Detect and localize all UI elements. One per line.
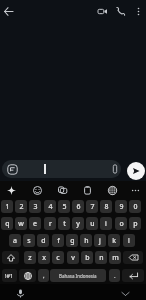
button[interactable]: Enter <box>122 269 144 282</box>
button[interactable]: 6 <box>72 200 84 213</box>
staticText: l <box>128 236 130 246</box>
button[interactable]: l <box>123 234 135 247</box>
button[interactable]: Send <box>127 162 145 180</box>
button[interactable]: z <box>24 251 36 264</box>
staticText: 6 <box>76 202 81 212</box>
staticText: p <box>133 219 138 229</box>
button[interactable]: v <box>67 251 79 264</box>
button[interactable]: More options <box>127 0 146 22</box>
button[interactable]: Language <box>19 269 36 282</box>
button[interactable]: s <box>23 234 35 247</box>
button[interactable]: 1 <box>1 200 13 213</box>
staticText: a <box>13 236 17 246</box>
button[interactable]: h <box>80 234 92 247</box>
staticText: 4 <box>48 202 53 212</box>
button[interactable]: b <box>81 251 93 264</box>
staticText: c <box>56 253 60 263</box>
button[interactable]: x <box>38 251 50 264</box>
button[interactable]: a <box>9 234 21 247</box>
staticText: u <box>90 219 95 229</box>
button[interactable]: Hide keyboard <box>117 285 133 300</box>
button[interactable]: q <box>1 217 13 230</box>
staticText: h <box>84 236 89 246</box>
staticText: m <box>112 253 119 263</box>
button[interactable]: w <box>15 217 27 230</box>
staticText: 2 <box>19 202 24 212</box>
button[interactable]: 5 <box>58 200 70 213</box>
staticText: x <box>42 253 46 263</box>
button[interactable]: c <box>52 251 64 264</box>
staticText: 8 <box>104 202 109 212</box>
staticText: f <box>57 236 60 246</box>
staticText: d <box>41 236 46 246</box>
staticText: 5 <box>62 202 67 212</box>
staticText: y <box>76 219 80 229</box>
button[interactable]: 4 <box>44 200 56 213</box>
button[interactable]: n <box>95 251 107 264</box>
button[interactable]: Shift <box>2 251 19 264</box>
staticText: 9 <box>119 202 124 212</box>
button[interactable]: r <box>44 217 56 230</box>
staticText: v <box>71 253 75 263</box>
button[interactable]: o <box>115 217 127 230</box>
button[interactable]: Emoji <box>29 182 45 198</box>
staticText: , <box>43 272 45 280</box>
button[interactable]: y <box>72 217 84 230</box>
button[interactable]: t <box>58 217 70 230</box>
button[interactable]: 0 <box>129 200 141 213</box>
button[interactable]: j <box>94 234 106 247</box>
staticText: r <box>49 219 52 229</box>
staticText: e <box>33 219 37 229</box>
button[interactable]: k <box>108 234 120 247</box>
button[interactable]: Video call <box>91 0 113 22</box>
button[interactable]: Voice call <box>109 0 131 22</box>
button[interactable]: More <box>127 182 143 198</box>
staticText: j <box>99 236 101 246</box>
button[interactable]: Back <box>0 0 19 22</box>
button[interactable]: 9 <box>115 200 127 213</box>
staticText: . <box>114 272 116 280</box>
button[interactable]: Symbols <box>2 269 17 282</box>
button[interactable]: 2 <box>15 200 27 213</box>
staticText: z <box>28 253 32 263</box>
button[interactable]: 3 <box>29 200 41 213</box>
button[interactable]: i <box>100 217 112 230</box>
staticText: Bahasa Indonesia <box>59 273 97 279</box>
staticText: 3 <box>33 202 38 212</box>
button[interactable]: 8 <box>100 200 112 213</box>
button[interactable]: , <box>38 269 49 282</box>
button[interactable]: m <box>109 251 121 264</box>
staticText: o <box>119 219 124 229</box>
button[interactable]: GIF <box>54 182 70 198</box>
staticText: !#1 <box>5 272 14 279</box>
button[interactable]: e <box>29 217 41 230</box>
button[interactable]: 7 <box>86 200 98 213</box>
staticText: 0 <box>133 202 138 212</box>
button[interactable]: Gboard <box>3 182 19 198</box>
staticText: k <box>112 236 116 246</box>
staticText: t <box>63 219 66 229</box>
button[interactable]: Bahasa Indonesia <box>50 269 106 282</box>
button[interactable]: g <box>66 234 78 247</box>
staticText: s <box>27 236 31 246</box>
staticText: b <box>85 253 90 263</box>
button[interactable]: . <box>109 269 120 282</box>
staticText: i <box>105 219 107 229</box>
staticText: n <box>99 253 104 263</box>
staticText: q <box>5 219 10 229</box>
button[interactable]: Voice input <box>12 285 28 300</box>
button[interactable]: p <box>129 217 141 230</box>
staticText: g <box>70 236 75 246</box>
staticText: w <box>18 219 24 229</box>
button[interactable]: Clipboard <box>79 182 95 198</box>
button[interactable]: d <box>37 234 49 247</box>
staticText: 7 <box>90 202 95 212</box>
button[interactable]: u <box>86 217 98 230</box>
staticText: 1 <box>5 202 10 212</box>
button[interactable]: Backspace <box>123 251 143 264</box>
button[interactable]: Themes <box>104 182 120 198</box>
button[interactable]: f <box>52 234 64 247</box>
button[interactable] <box>2 160 121 178</box>
